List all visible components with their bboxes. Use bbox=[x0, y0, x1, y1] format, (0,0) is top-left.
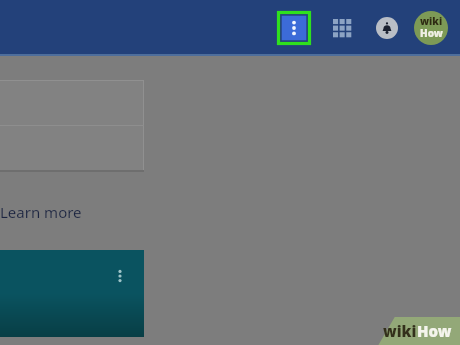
staticText: How bbox=[417, 321, 452, 341]
staticText: How bbox=[420, 26, 443, 40]
button[interactable]: Card options bbox=[0, 250, 144, 337]
button[interactable]: Learn more bbox=[0, 200, 86, 224]
button[interactable]: Notifications bbox=[372, 13, 402, 43]
staticText: wiki bbox=[383, 321, 417, 341]
button[interactable]: Card options bbox=[108, 264, 132, 288]
button[interactable] bbox=[0, 80, 144, 172]
staticText: Learn more bbox=[0, 202, 82, 222]
button[interactable]: More options bbox=[276, 10, 312, 46]
button[interactable]: Google apps bbox=[326, 12, 358, 44]
button[interactable]: Account bbox=[414, 11, 448, 45]
staticText: wiki bbox=[420, 14, 443, 28]
